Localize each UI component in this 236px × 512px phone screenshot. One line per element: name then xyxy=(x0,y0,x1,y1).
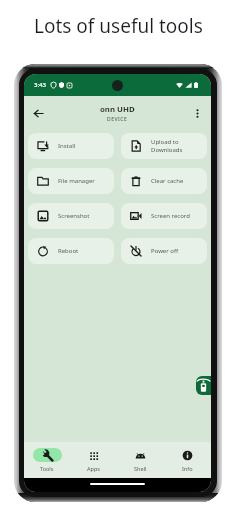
staticText: Tools xyxy=(40,465,54,472)
staticText: Install xyxy=(58,142,76,150)
staticText: onn UHD xyxy=(100,104,135,115)
staticText: Shell xyxy=(134,465,147,472)
button[interactable]: Screen record xyxy=(121,203,207,229)
button[interactable]: Tools xyxy=(24,442,70,478)
button[interactable]: Info xyxy=(164,442,211,478)
staticText: DEVICE xyxy=(107,116,128,123)
staticText: Clear cache xyxy=(151,177,184,185)
button[interactable]: Install xyxy=(28,133,114,159)
button[interactable]: Remote control xyxy=(196,376,211,395)
staticText: File manager xyxy=(58,177,95,185)
staticText: Lots of useful tools xyxy=(34,13,203,39)
button[interactable]: Power off xyxy=(121,238,207,264)
button[interactable]: Shell xyxy=(117,442,164,478)
button[interactable]: File manager xyxy=(28,168,114,194)
staticText: Reboot xyxy=(58,247,79,255)
staticText: Info xyxy=(182,465,193,472)
staticText: Upload to Downloads xyxy=(151,138,183,154)
button[interactable]: Back xyxy=(28,103,48,123)
button[interactable]: Upload to Downloads xyxy=(121,133,207,159)
staticText: 3:43 xyxy=(34,81,46,89)
staticText: Screen record xyxy=(151,212,190,220)
staticText: Apps xyxy=(87,465,100,472)
button[interactable]: More options xyxy=(187,103,207,123)
button[interactable]: Apps xyxy=(70,442,117,478)
staticText: Power off xyxy=(151,247,179,255)
button[interactable]: Reboot xyxy=(28,238,114,264)
staticText: Screenshot xyxy=(58,212,90,220)
button[interactable]: Screenshot xyxy=(28,203,114,229)
button[interactable]: Clear cache xyxy=(121,168,207,194)
